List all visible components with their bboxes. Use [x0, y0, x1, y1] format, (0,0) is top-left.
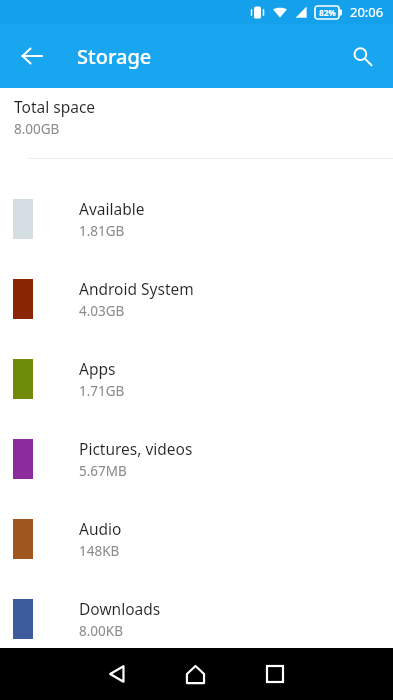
- button[interactable]: Downloads: [0, 579, 393, 659]
- staticText: 8.00KB: [79, 622, 123, 640]
- button[interactable]: Pictures, videos: [0, 419, 393, 499]
- staticText: Apps: [79, 358, 116, 379]
- button[interactable]: Navigate up: [12, 36, 52, 76]
- button[interactable]: Recent apps: [235, 648, 314, 700]
- button[interactable]: Search: [340, 34, 384, 78]
- staticText: 4.03GB: [79, 302, 125, 320]
- staticText: 8.00GB: [14, 120, 60, 138]
- button[interactable]: Audio: [0, 499, 393, 579]
- staticText: 148KB: [79, 542, 120, 560]
- staticText: Android System: [79, 278, 194, 299]
- staticText: Audio: [79, 518, 122, 539]
- button[interactable]: Android System: [0, 259, 393, 339]
- button[interactable]: Apps: [0, 339, 393, 419]
- staticText: Downloads: [79, 598, 161, 619]
- staticText: Available: [79, 198, 145, 219]
- button[interactable]: Available: [0, 179, 393, 259]
- staticText: Total space: [14, 96, 96, 117]
- button[interactable]: Home: [156, 648, 235, 700]
- staticText: 5.67MB: [79, 462, 127, 480]
- staticText: 82%: [319, 7, 336, 18]
- button[interactable]: Back: [78, 648, 156, 700]
- staticText: 20:06: [350, 3, 384, 21]
- staticText: Storage: [77, 43, 152, 70]
- staticText: 1.81GB: [79, 222, 125, 240]
- staticText: Pictures, videos: [79, 438, 193, 459]
- staticText: 1.71GB: [79, 382, 125, 400]
